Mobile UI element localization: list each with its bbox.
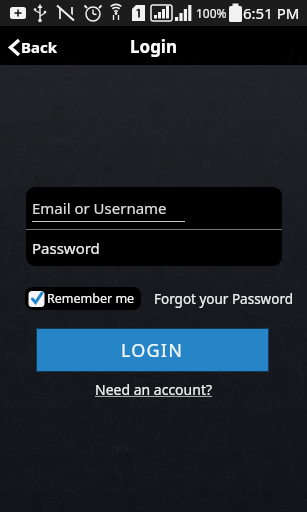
staticText: Login <box>130 35 178 58</box>
staticText: Email or Username <box>32 198 167 218</box>
staticText: Password <box>32 238 100 258</box>
staticText: Back <box>21 37 58 57</box>
button[interactable]: LOGIN <box>36 328 269 372</box>
staticText: Remember me <box>47 290 135 307</box>
button[interactable]: Forgot your Password <box>154 290 294 308</box>
button[interactable]: Password <box>26 230 282 266</box>
button[interactable]: Back <box>0 35 58 57</box>
staticText: LOGIN <box>121 338 184 363</box>
staticText: 6:51 PM <box>243 3 300 23</box>
button[interactable]: Email or Username <box>26 187 282 229</box>
staticText: 100% <box>196 5 227 21</box>
button[interactable]: Need an account? <box>95 380 213 399</box>
button[interactable]: Remember me <box>25 287 141 310</box>
